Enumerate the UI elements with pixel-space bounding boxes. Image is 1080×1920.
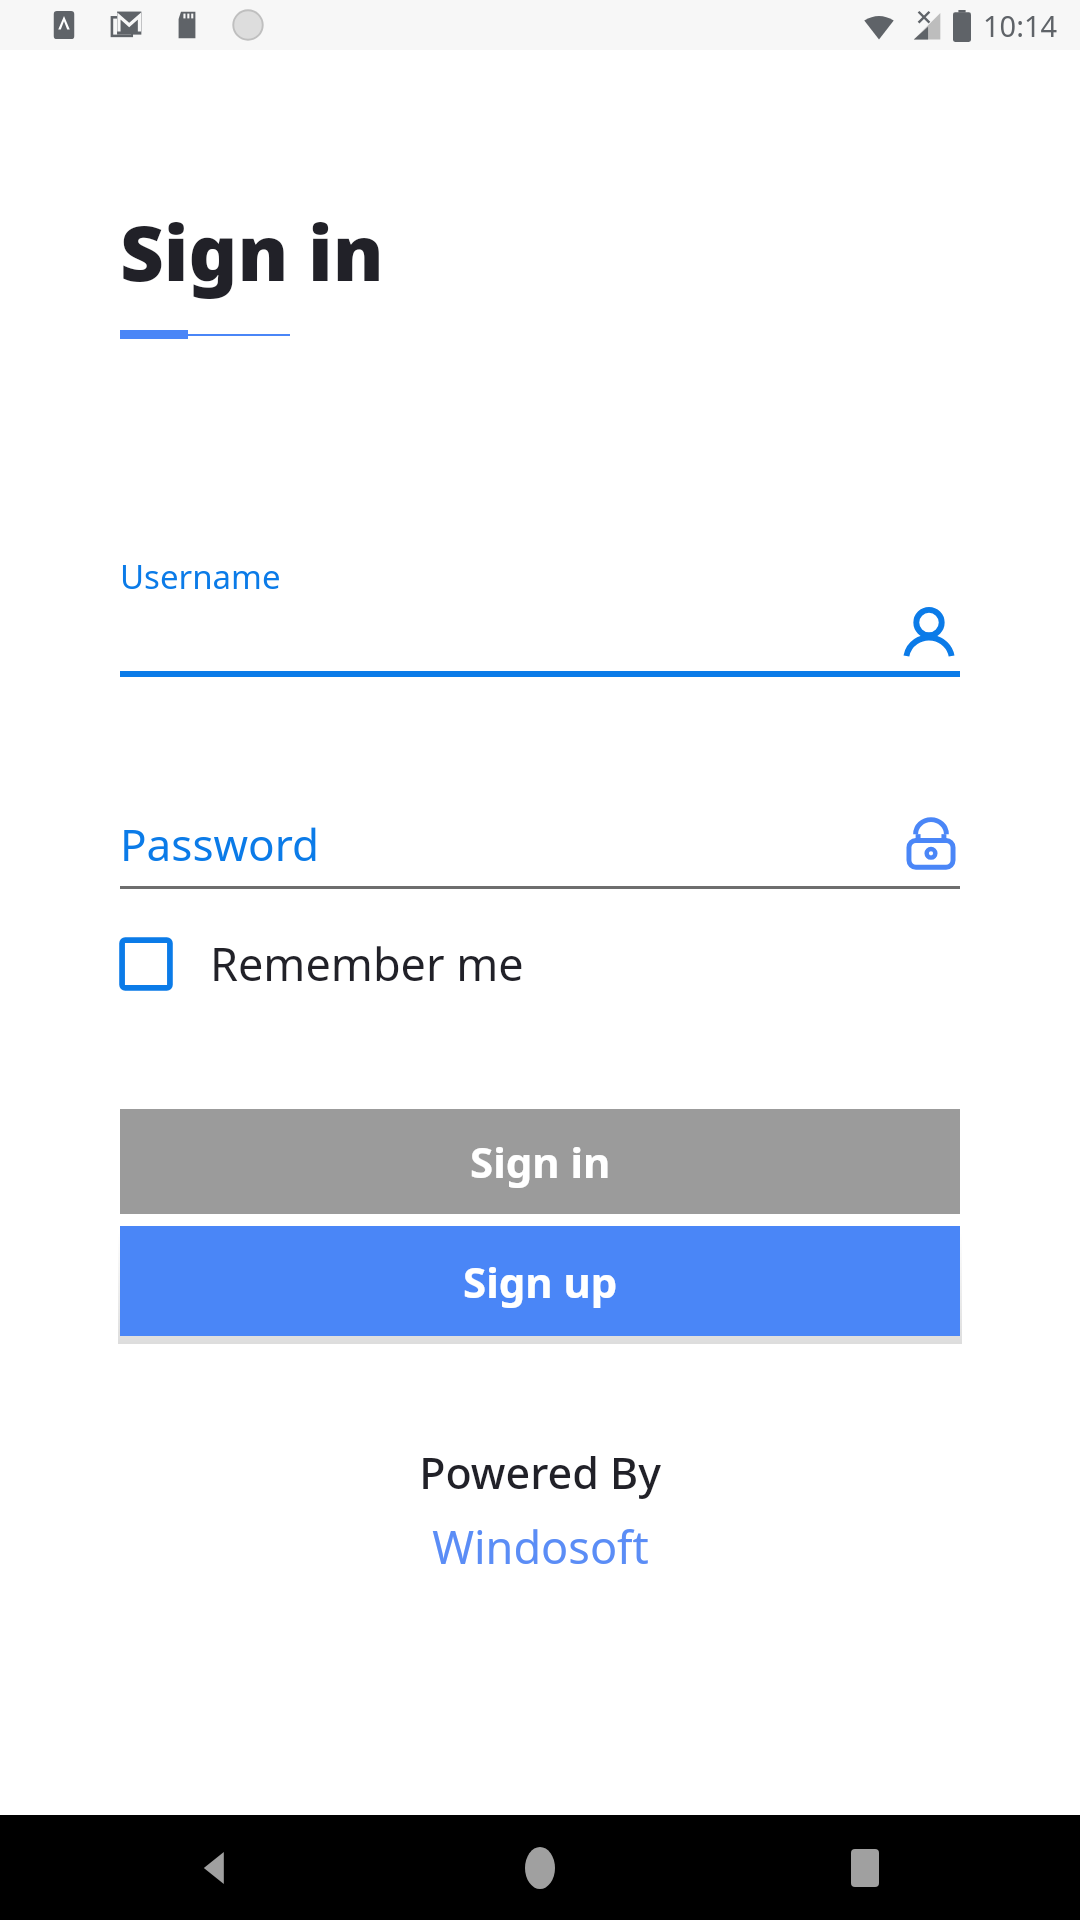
button[interactable]: Back [180,1833,250,1903]
staticText: Password [120,814,320,874]
button[interactable]: Username [120,554,960,677]
button[interactable]: Sign up [120,1226,960,1336]
staticText: Sign in [470,1133,611,1190]
other: Password [902,815,960,873]
staticText: Sign in [120,200,384,304]
staticText: 10:14 [983,6,1058,45]
button[interactable]: Recent apps [830,1833,900,1903]
button[interactable]: Home [505,1833,575,1903]
other: Username [898,604,960,666]
staticText: Powered By [419,1443,661,1502]
staticText: Sign up [463,1253,618,1310]
button[interactable]: Sign in [120,1109,960,1214]
staticText: Remember me [210,933,524,994]
button[interactable]: Windosoft [432,1516,649,1577]
staticText: Username [120,554,281,599]
button[interactable]: Password [120,802,960,889]
button[interactable]: Remember me [120,933,524,994]
